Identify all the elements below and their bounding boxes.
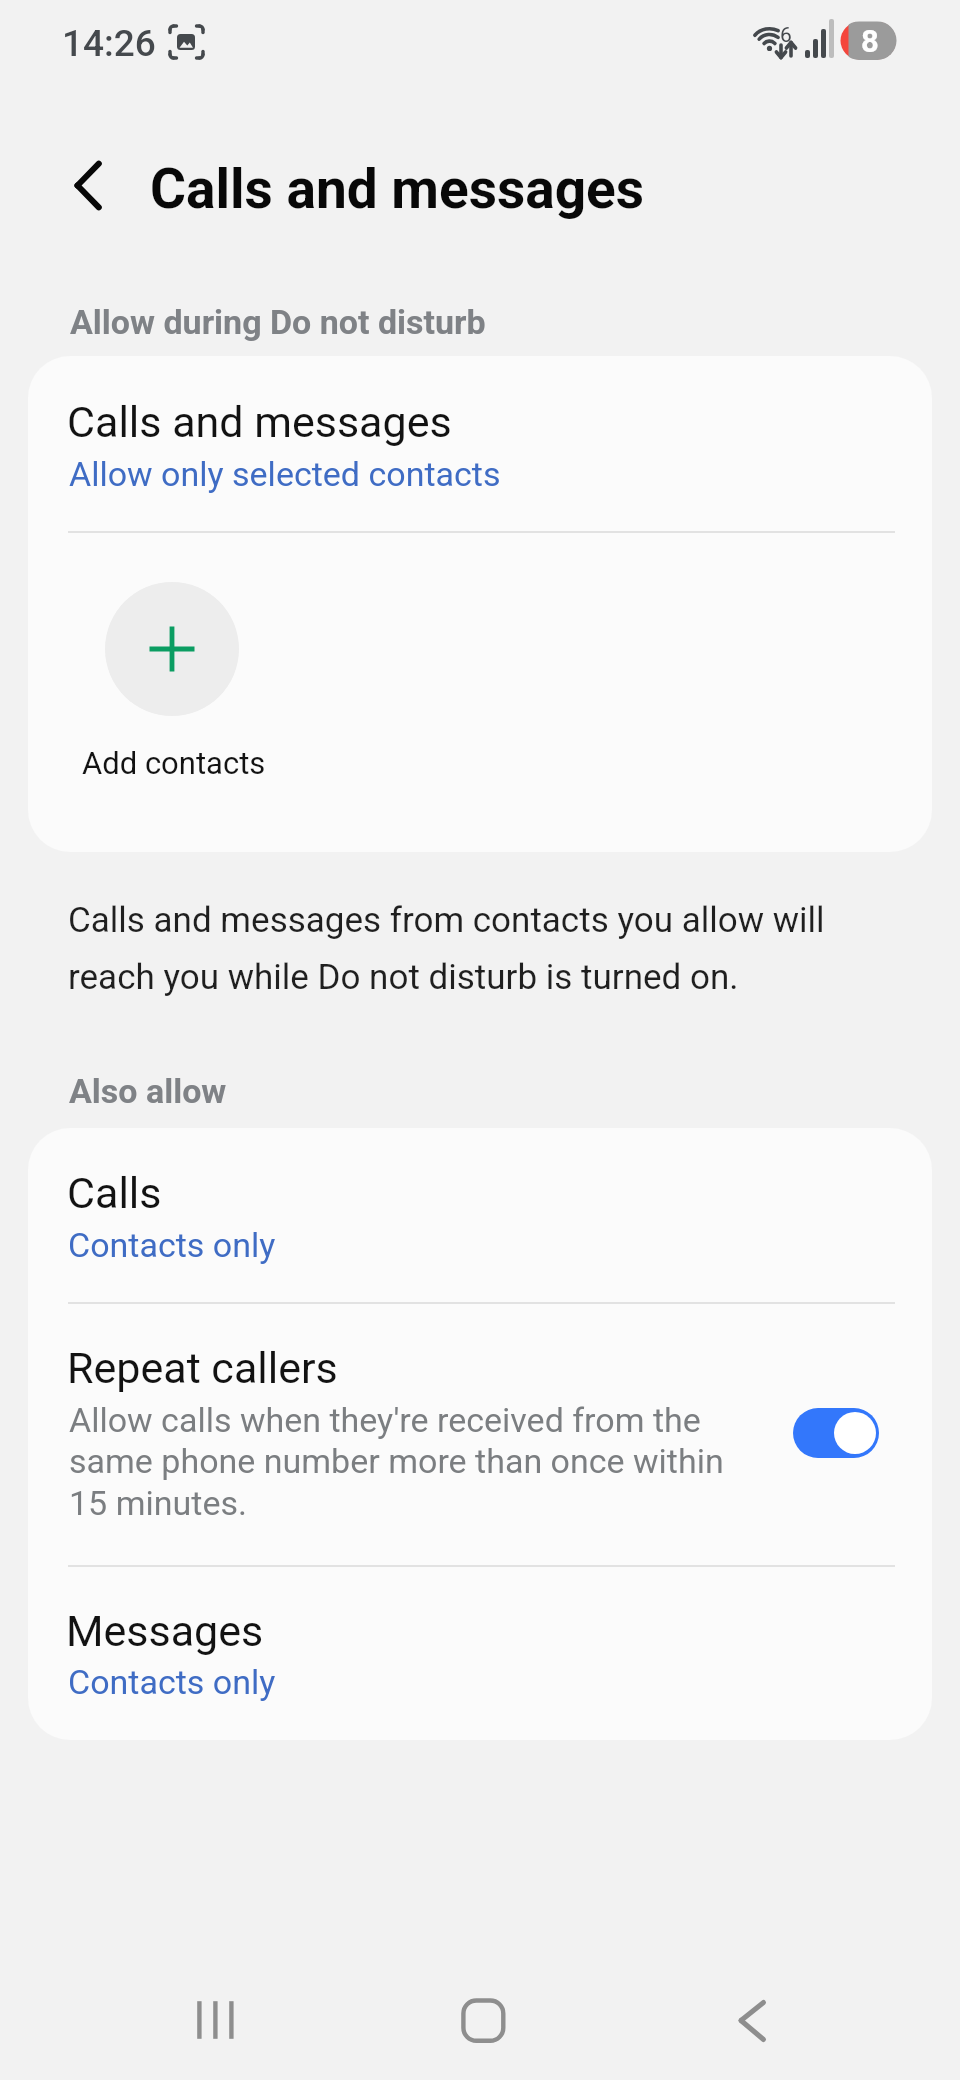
button[interactable]: Add contacts <box>105 582 239 716</box>
button[interactable]: Recent apps <box>145 1950 285 2080</box>
staticText: 8 <box>861 23 879 59</box>
staticText: Calls and messages <box>67 397 452 447</box>
staticText: 6 <box>780 23 792 48</box>
button[interactable]: Calls and messages <box>28 356 932 532</box>
staticText: Calls <box>67 1168 162 1218</box>
staticText: Calls and messages <box>150 157 645 221</box>
staticText: Allow only selected contacts <box>69 454 501 494</box>
button[interactable]: Navigate up <box>40 138 135 233</box>
button[interactable]: Messages <box>28 1567 932 1740</box>
staticText: Contacts only <box>68 1225 276 1265</box>
staticText: Repeat callers <box>67 1343 338 1393</box>
staticText: Allow calls when they're received from t… <box>69 1400 731 1524</box>
staticText: Messages <box>66 1606 264 1656</box>
button[interactable]: Repeat callers <box>28 1304 932 1566</box>
staticText: Calls and messages from contacts you all… <box>68 900 870 998</box>
staticText: Allow during Do not disturb <box>70 302 486 342</box>
staticText: Add contacts <box>82 745 266 781</box>
staticText: 14:26 <box>62 22 156 65</box>
button[interactable]: Calls <box>28 1128 932 1303</box>
staticText: Contacts only <box>68 1662 276 1702</box>
staticText: Also allow <box>69 1071 227 1111</box>
button[interactable]: Back <box>682 1950 822 2080</box>
button[interactable]: Home <box>413 1950 553 2080</box>
button[interactable]: Repeat callers, on <box>793 1408 879 1458</box>
